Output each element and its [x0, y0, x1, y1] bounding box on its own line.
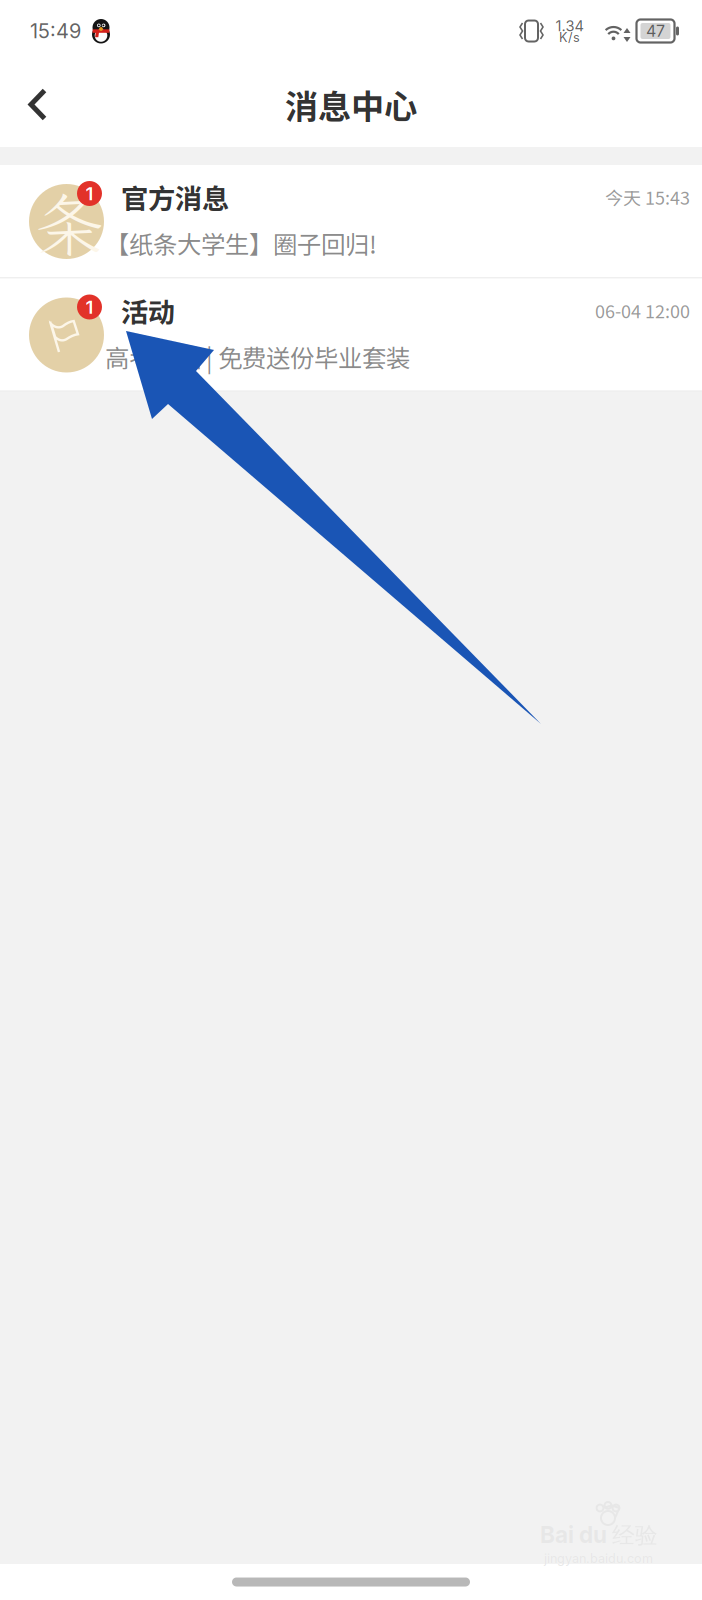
- button[interactable]: 条: [0, 165, 702, 277]
- staticText: 【纸条大学生】圈子回归!: [105, 225, 377, 261]
- staticText: 消息中心: [285, 80, 417, 129]
- staticText: 活动: [121, 291, 175, 330]
- button[interactable]: 1: [0, 278, 702, 390]
- staticText: 1: [85, 296, 93, 318]
- staticText: 47: [646, 21, 665, 41]
- staticText: K/s: [559, 30, 580, 45]
- staticText: 06-04 12:00: [595, 297, 690, 324]
- staticText: jingyan.baidu.com: [544, 1551, 653, 1566]
- staticText: 条: [35, 178, 104, 269]
- staticText: 高考加油 | 免费送份毕业套装: [105, 339, 410, 374]
- staticText: 官方消息: [121, 177, 229, 217]
- staticText: 1: [85, 182, 93, 205]
- staticText: 今天 15:43: [605, 184, 690, 210]
- staticText: Bai du 经验: [540, 1521, 658, 1550]
- staticText: 1.34: [555, 17, 583, 35]
- staticText: 15:49: [30, 19, 81, 43]
- button[interactable]: Back: [0, 62, 76, 147]
